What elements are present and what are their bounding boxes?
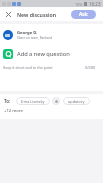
staticText: updatory bbox=[68, 99, 85, 104]
staticText: To: bbox=[4, 98, 11, 104]
button[interactable]: Close bbox=[3, 9, 14, 20]
staticText: Keep it short and to the point bbox=[3, 65, 53, 70]
staticText: Share on team, Backend bbox=[17, 36, 53, 40]
button[interactable]: Ask bbox=[71, 10, 96, 19]
staticText: Add a new question bbox=[17, 50, 70, 58]
staticText: 16:23 bbox=[89, 1, 101, 7]
staticText: GD bbox=[5, 33, 11, 38]
staticText: 10% bbox=[75, 2, 83, 7]
staticText: George D. bbox=[17, 30, 38, 36]
staticText: 0/280 bbox=[85, 65, 96, 70]
button[interactable]: updatory bbox=[63, 97, 90, 105]
button[interactable]: Irina Lisetsky bbox=[16, 97, 50, 105]
staticText: Ask bbox=[79, 11, 88, 18]
staticText: Irina Lisetsky bbox=[21, 99, 45, 104]
staticText: +12 more bbox=[4, 108, 23, 114]
staticText: New discussion bbox=[17, 11, 56, 18]
